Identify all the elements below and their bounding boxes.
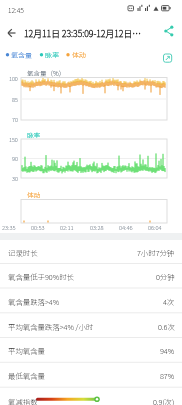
button[interactable] [2, 25, 20, 43]
staticText: 0分钟 [156, 271, 175, 282]
staticText: 06:04 [148, 223, 162, 231]
staticText: 最低氧含量 [8, 370, 45, 381]
staticText: 7小时7分钟 [137, 247, 175, 258]
staticText: 4次 [163, 296, 175, 307]
staticText: 体动 [27, 190, 41, 200]
staticText: 氧含量（%） [27, 68, 66, 77]
staticText: 脉率 [27, 130, 41, 140]
staticText: 平均氧含量 [8, 345, 45, 356]
staticText: 氧含量（%） [27, 68, 66, 77]
staticText: 记录时长 [8, 247, 38, 258]
button[interactable] [0, 289, 182, 313]
staticText: 12月11日 23:35:09-12月12日… [24, 27, 141, 40]
staticText: 00:53 [31, 223, 45, 231]
staticText: 02:11 [60, 223, 74, 231]
staticText: 23:35 [2, 223, 16, 231]
staticText: 体动 [72, 50, 86, 60]
staticText: 7小时7分钟 [137, 247, 175, 258]
staticText: 04:46 [119, 223, 133, 231]
staticText: 0.6次 [158, 321, 175, 332]
staticText: 23:35 [2, 223, 16, 231]
staticText: 0.9(次) [153, 396, 175, 405]
staticText: 氧含量 [11, 50, 32, 60]
staticText: 0.6次 [158, 321, 175, 332]
staticText: 94% [160, 345, 175, 356]
staticText: 100 [9, 75, 18, 83]
staticText: 氧含量低于90%时长 [8, 271, 74, 282]
staticText: 氧含量低于90%时长 [8, 271, 74, 282]
staticText: 70 [12, 116, 18, 124]
staticText: 0分钟 [156, 271, 175, 282]
button[interactable] [0, 362, 182, 386]
staticText: 90 [12, 155, 18, 163]
staticText: 94% [160, 345, 175, 356]
staticText: 氧减指数 [8, 396, 38, 405]
staticText: 4次 [163, 296, 175, 307]
staticText: 150 [9, 136, 18, 144]
button[interactable]: 氧含量 [0, 0, 21, 10]
staticText: 100 [9, 75, 18, 83]
staticText: 记录时长 [8, 247, 38, 258]
staticText: 02:11 [60, 223, 74, 231]
staticText: 85 [12, 96, 18, 104]
button[interactable] [0, 264, 182, 288]
staticText: 氧含量跌落>4% [8, 296, 60, 307]
staticText: 平均氧含量跌落>4% /小时 [8, 321, 94, 332]
staticText: 85 [12, 96, 18, 104]
staticText: 90 [12, 155, 18, 163]
button[interactable] [160, 24, 180, 44]
staticText: 03:28 [90, 223, 104, 231]
button[interactable] [0, 313, 182, 337]
staticText: 87% [160, 370, 175, 381]
staticText: 脉率 [45, 50, 59, 60]
staticText: 体动 [72, 50, 86, 60]
staticText: 平均氧含量 [8, 345, 45, 356]
staticText: 70 [12, 116, 18, 124]
button[interactable] [0, 239, 182, 263]
staticText: 平均氧含量跌落>4% /小时 [8, 321, 94, 332]
staticText: 体动 [27, 190, 41, 200]
staticText: 06:04 [148, 223, 162, 231]
staticText: 12:45 [8, 5, 24, 15]
staticText: 12:45 [8, 5, 24, 15]
staticText: 150 [9, 136, 18, 144]
button[interactable] [0, 338, 182, 362]
staticText: 30 [12, 175, 18, 183]
button[interactable]: 体动 [0, 0, 14, 10]
staticText: 氧含量跌落>4% [8, 296, 60, 307]
staticText: 氧减指数 [8, 396, 38, 405]
staticText: 30 [12, 175, 18, 183]
staticText: 脉率 [27, 130, 41, 140]
staticText: 87% [160, 370, 175, 381]
staticText: 脉率 [45, 50, 59, 60]
staticText: 03:28 [90, 223, 104, 231]
staticText: 最低氧含量 [8, 370, 45, 381]
staticText: 0.9(次) [153, 396, 175, 405]
button[interactable]: 脉率 [0, 0, 14, 10]
staticText: 氧含量 [11, 50, 32, 60]
button[interactable]: 12月11日 23:35:09-12月12日… [0, 0, 117, 13]
staticText: 04:46 [119, 223, 133, 231]
staticText: 00:53 [31, 223, 45, 231]
staticText: 12月11日 23:35:09-12月12日… [24, 27, 141, 40]
